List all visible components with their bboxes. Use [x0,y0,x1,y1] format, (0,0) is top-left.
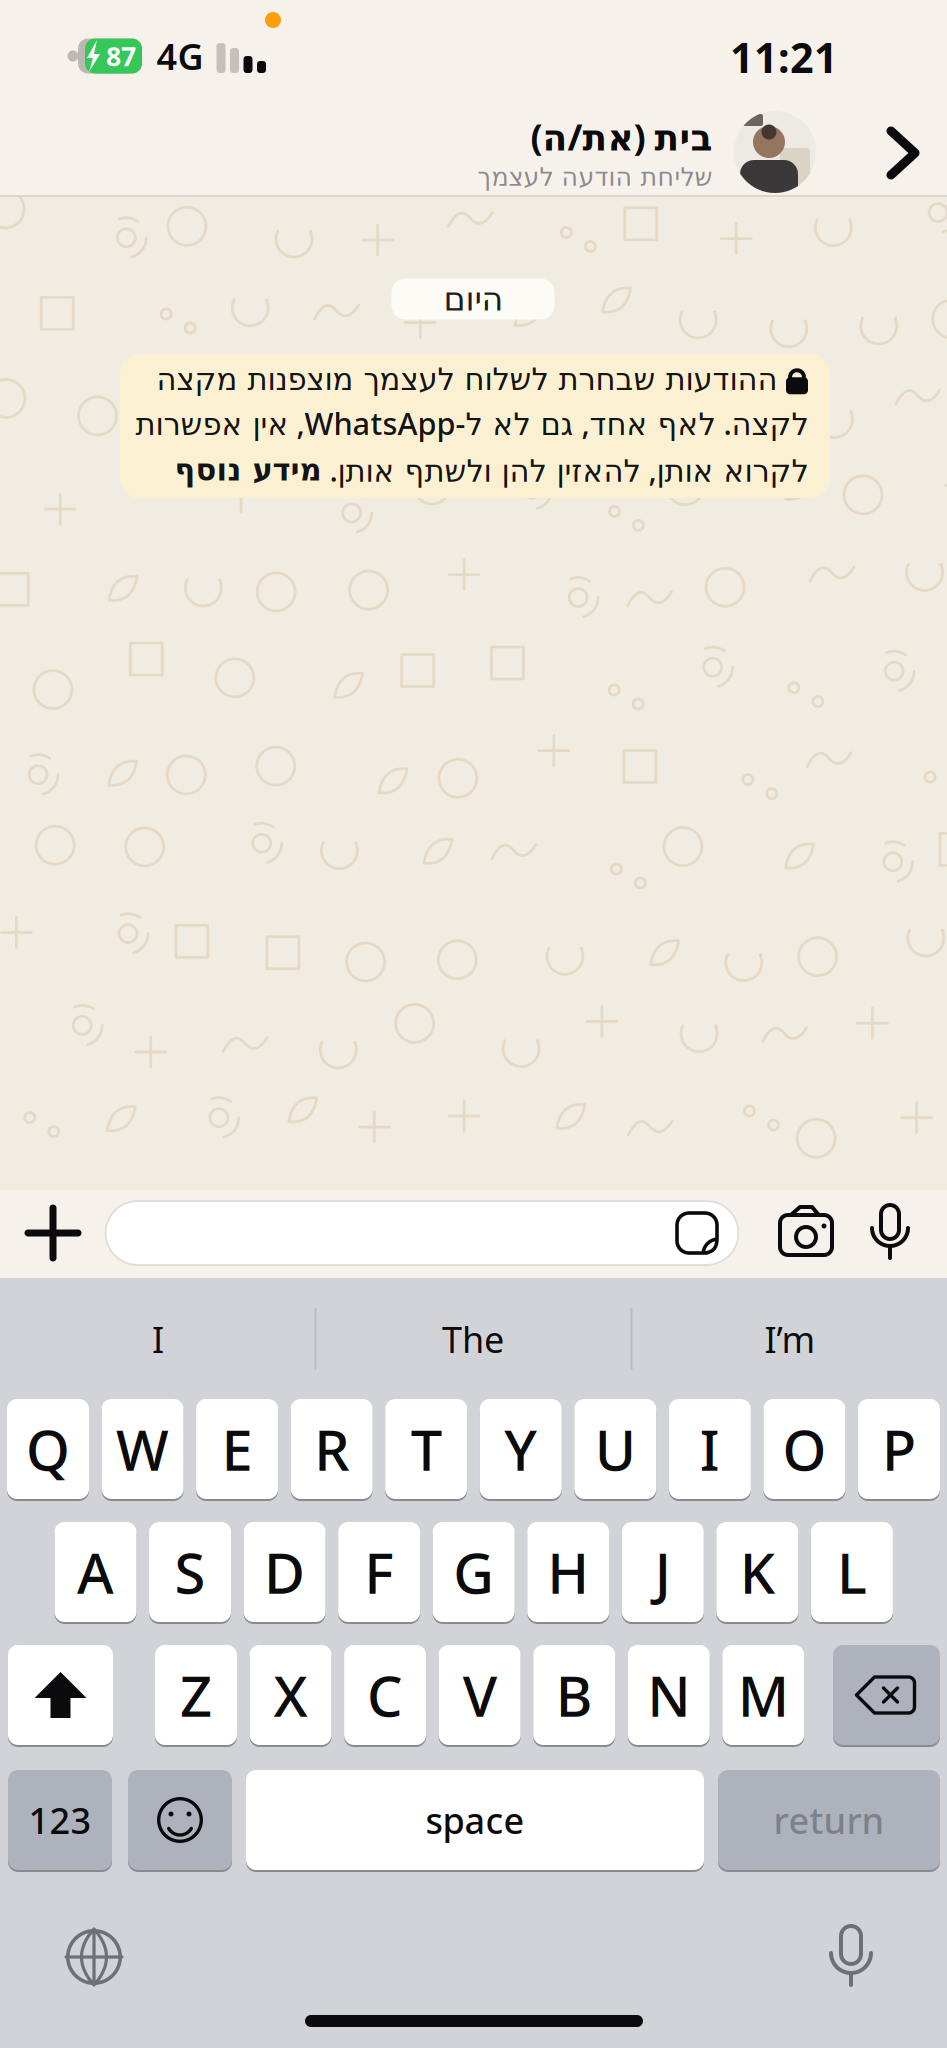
staticText: 123 [28,1796,91,1844]
staticText: F [364,1535,394,1609]
staticText: I [700,1412,720,1486]
button[interactable]: I [18,1299,298,1379]
button[interactable]: return [718,1769,940,1871]
button[interactable]: R [291,1398,373,1500]
button[interactable]: N [628,1644,710,1746]
button[interactable]: P [858,1398,940,1500]
staticText: שליחת הודעה לעצמך [477,162,712,191]
staticText: מידע נוסף [174,452,321,487]
staticText: D [264,1535,305,1609]
staticText: E [222,1412,253,1486]
button[interactable]: Y [480,1398,562,1500]
button[interactable]: S [149,1521,231,1623]
staticText: X [274,1658,308,1732]
button[interactable]: W [102,1398,184,1500]
button[interactable]: M [722,1644,804,1746]
staticText: Y [504,1412,537,1486]
staticText: H [547,1535,589,1609]
staticText: 87 [106,38,136,74]
staticText: היום [443,280,503,318]
button[interactable]: D [244,1521,326,1623]
staticText: לקצה. לאף אחד, גם לא ל-WhatsApp, אין אפש… [135,403,808,443]
staticText: I [152,1315,164,1363]
staticText: K [740,1535,775,1609]
button[interactable]: Delete [833,1644,940,1746]
staticText: return [773,1796,884,1844]
button[interactable]: Voice message [868,1202,912,1260]
button[interactable]: Profile [734,111,816,193]
staticText: C [367,1658,403,1732]
button[interactable]: E [196,1398,278,1500]
button[interactable]: 123 [8,1769,112,1871]
button[interactable]: Stickers [677,1213,717,1253]
button[interactable]: Z [155,1644,237,1746]
staticText: 4G [156,32,203,80]
button[interactable]: Attach [28,1208,78,1258]
staticText: space [425,1796,524,1844]
staticText: N [647,1658,690,1732]
button[interactable]: H [527,1521,609,1623]
button[interactable]: B [533,1644,615,1746]
staticText: S [175,1535,206,1609]
button[interactable]: Q [7,1398,89,1500]
button[interactable]: U [574,1398,656,1500]
staticText: 11:21 [730,30,838,84]
button[interactable]: V [439,1644,521,1746]
button[interactable]: Shift [8,1644,113,1746]
button[interactable]: The [333,1299,613,1379]
button[interactable]: space [246,1769,704,1871]
staticText: P [882,1412,916,1486]
staticText: Z [180,1658,212,1732]
staticText: The [442,1315,504,1363]
staticText: M [738,1658,789,1732]
staticText: V [463,1658,497,1732]
button[interactable]: Next keyboard [66,1929,122,1985]
button[interactable]: T [385,1398,467,1500]
staticText: W [116,1412,169,1486]
staticText: ההודעות שבחרת לשלוח לעצמך מוצפנות מקצה [156,362,777,397]
button[interactable]: Dictation [826,1923,876,1987]
staticText: O [782,1412,826,1486]
button[interactable]: Message [104,1200,739,1266]
staticText: U [595,1412,636,1486]
button[interactable]: A [54,1521,136,1623]
button[interactable]: L [811,1521,893,1623]
button[interactable]: Back [881,125,925,181]
button[interactable]: O [763,1398,845,1500]
staticText: G [453,1535,494,1609]
button[interactable]: G [433,1521,515,1623]
staticText: B [556,1658,593,1732]
staticText: Q [26,1412,70,1486]
button[interactable]: C [344,1644,426,1746]
staticText: J [655,1535,671,1609]
staticText: R [314,1412,349,1486]
button[interactable]: Emoji [128,1769,232,1871]
staticText: T [411,1412,442,1486]
button[interactable]: X [250,1644,332,1746]
staticText: לקרוא אותן, להאזין להן ולשתף אותן. [329,449,808,490]
button[interactable]: Camera [778,1207,834,1257]
button[interactable]: I [669,1398,751,1500]
staticText: A [77,1535,114,1609]
button[interactable]: F [338,1521,420,1623]
button[interactable]: I’m [650,1299,930,1379]
button[interactable]: K [716,1521,798,1623]
button[interactable]: J [622,1521,704,1623]
staticText: L [837,1535,867,1609]
staticText: בית (את/ה) [530,113,712,160]
staticText: I’m [764,1315,815,1363]
